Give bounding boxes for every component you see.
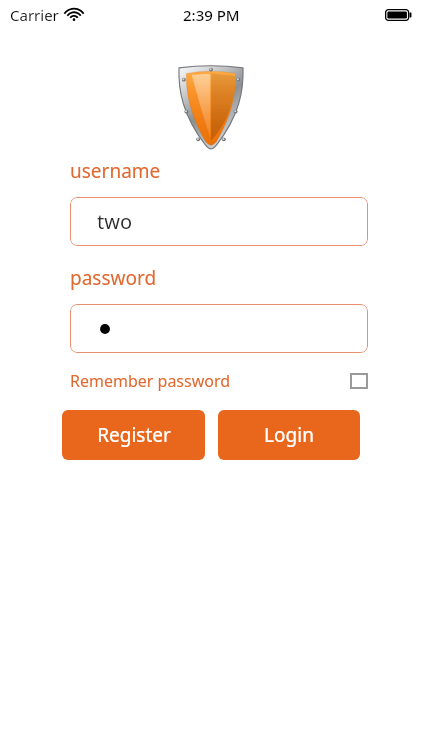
button[interactable]: Login xyxy=(218,410,360,460)
button[interactable]: Remember password xyxy=(70,367,368,395)
staticText: Register xyxy=(97,422,171,448)
staticText: two xyxy=(97,208,133,235)
other: Remember password checkbox xyxy=(350,373,368,389)
staticText: Login xyxy=(264,422,314,448)
staticText: Carrier xyxy=(10,5,59,25)
button[interactable]: two xyxy=(70,197,368,246)
button[interactable]: Register xyxy=(62,410,205,460)
other: Security shield logo xyxy=(179,65,243,149)
staticText: password xyxy=(70,265,157,291)
other: Wi-Fi signal xyxy=(66,9,82,21)
staticText: Remember password xyxy=(70,370,231,392)
staticText: 2:39 PM xyxy=(183,5,240,25)
staticText: username xyxy=(70,158,161,184)
button[interactable] xyxy=(70,304,368,353)
other: Battery full xyxy=(385,9,412,21)
